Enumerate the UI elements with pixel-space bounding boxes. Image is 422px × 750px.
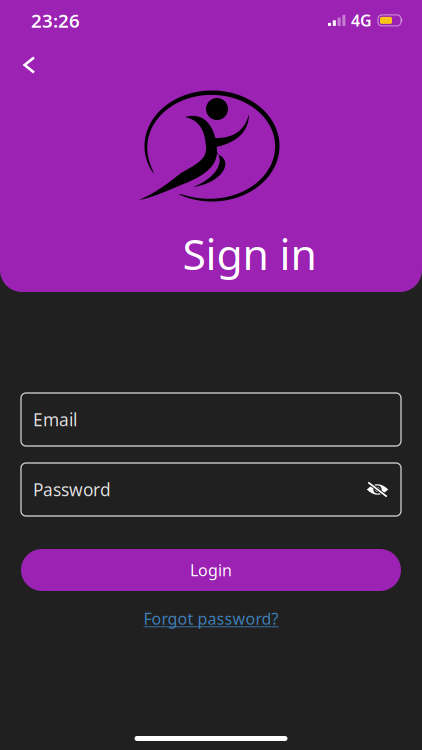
button[interactable]: Forgot password? (143, 608, 278, 629)
staticText: Email (33, 408, 77, 431)
staticText: 23:26 (31, 8, 80, 33)
button[interactable]: Login (21, 549, 401, 591)
staticText: Login (190, 559, 232, 581)
staticText: Sign in (182, 225, 316, 282)
staticText: 4G (351, 10, 372, 31)
staticText: Forgot password? (143, 608, 278, 629)
button[interactable]: Back (12, 49, 46, 81)
button[interactable]: Show password (366, 481, 389, 497)
staticText: Password (33, 478, 111, 501)
